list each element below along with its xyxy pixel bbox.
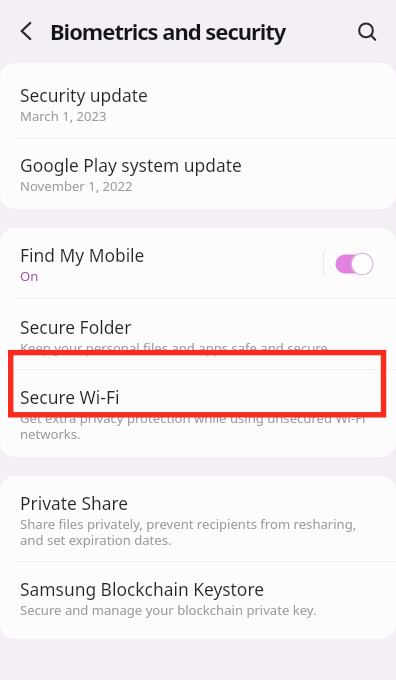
button[interactable]: Samsung Blockchain Keystore <box>0 562 396 639</box>
staticText: Samsung Blockchain Keystore <box>20 577 265 601</box>
staticText: Biometrics and security <box>50 16 286 46</box>
staticText: Get extra privacy protection while using… <box>20 409 371 442</box>
button[interactable]: Secure Wi-Fi <box>0 370 396 457</box>
staticText: Secure Folder <box>20 315 132 339</box>
staticText: Secure and manage your blockchain privat… <box>20 601 317 619</box>
button[interactable]: Find My Mobile on <box>333 250 377 278</box>
button[interactable]: Private Share <box>0 476 396 562</box>
button[interactable]: Navigate back <box>8 13 44 49</box>
staticText: November 1, 2022 <box>20 177 133 195</box>
staticText: Google Play system update <box>20 153 242 177</box>
button[interactable]: Find My Mobile <box>0 228 396 299</box>
staticText: Keep your personal files and apps safe a… <box>20 339 332 357</box>
staticText: Private Share <box>20 491 129 515</box>
button[interactable]: Security update <box>0 63 396 139</box>
button[interactable]: Secure Folder <box>0 299 396 370</box>
staticText: On <box>20 267 39 285</box>
staticText: Share files privately, prevent recipient… <box>20 515 371 548</box>
button[interactable]: Google Play system update <box>0 139 396 209</box>
staticText: March 1, 2023 <box>20 107 107 125</box>
staticText: Security update <box>20 83 148 107</box>
staticText: Secure Wi-Fi <box>20 385 120 409</box>
button[interactable]: Search <box>348 13 383 48</box>
staticText: Find My Mobile <box>20 243 145 267</box>
